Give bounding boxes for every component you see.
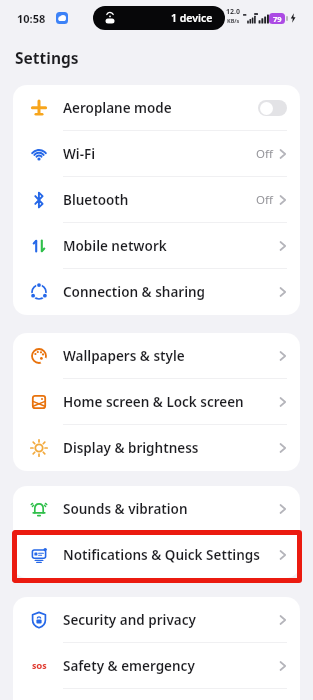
staticText: Settings (15, 47, 79, 68)
staticText: Bluetooth (63, 191, 256, 209)
button[interactable]: Notifications & Quick Settings (13, 532, 300, 577)
button[interactable]: Home screen & Lock screen (13, 379, 300, 424)
staticText: Sounds & vibration (63, 500, 279, 518)
staticText: Aeroplane mode (63, 99, 258, 117)
staticText: Display & brightness (63, 439, 279, 457)
button[interactable]: Mobile network (13, 223, 300, 268)
staticText: Connection & sharing (63, 283, 279, 301)
button[interactable]: Bluetooth (13, 177, 300, 222)
staticText: Wi-Fi (63, 145, 256, 163)
staticText: Mobile network (63, 237, 279, 255)
staticText: Security and privacy (63, 611, 279, 629)
staticText: Safety & emergency (63, 657, 279, 675)
button[interactable]: Connection & sharing (13, 269, 300, 314)
staticText: KB/s (227, 17, 240, 24)
staticText: Wallpapers & style (63, 347, 279, 365)
staticText: Off (256, 146, 273, 162)
staticText: Notifications & Quick Settings (63, 546, 279, 564)
button[interactable]: SOS (13, 643, 300, 688)
staticText: Off (256, 192, 273, 208)
button[interactable]: Wallpapers & style (13, 333, 300, 378)
staticText: 1 device (171, 11, 213, 25)
button[interactable]: Sounds & vibration (13, 486, 300, 531)
button[interactable]: Display & brightness (13, 425, 300, 470)
staticText: 12.0 (226, 7, 240, 17)
staticText: 79 (273, 14, 282, 24)
staticText: SOS (32, 661, 47, 671)
button[interactable]: Wi-Fi (13, 131, 300, 176)
staticText: 10:58 (17, 11, 46, 26)
button[interactable]: Aeroplane mode (13, 85, 300, 130)
staticText: Home screen & Lock screen (63, 393, 279, 411)
button[interactable]: Security and privacy (13, 597, 300, 642)
